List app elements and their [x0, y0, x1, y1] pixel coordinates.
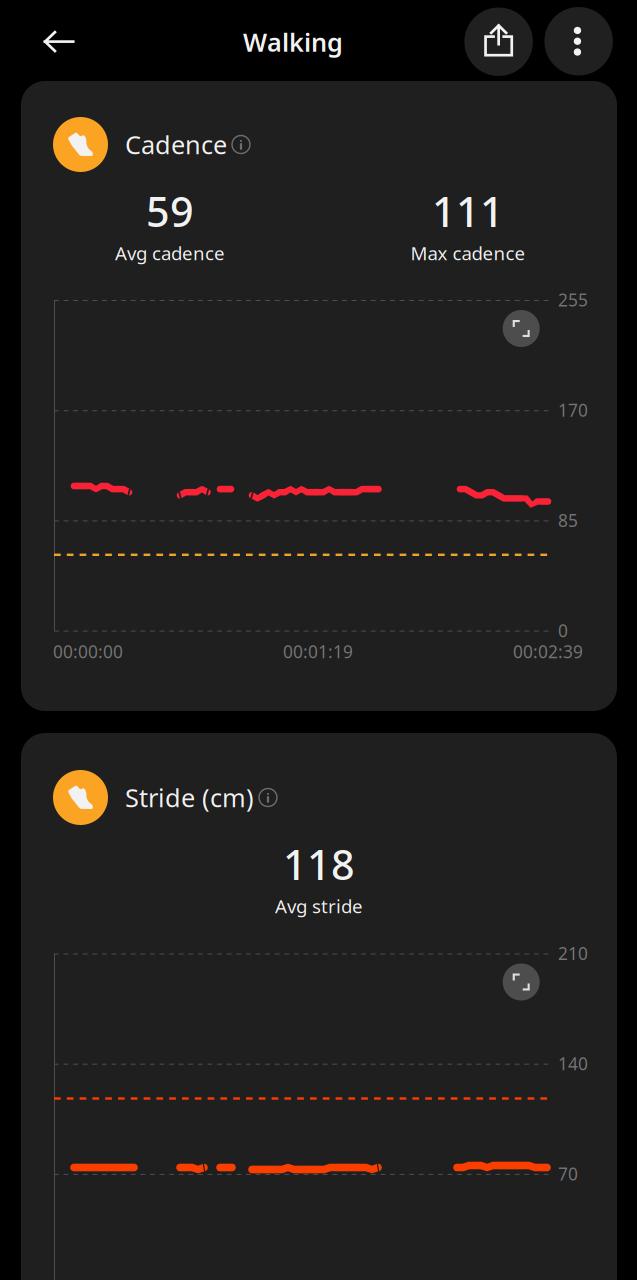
- staticText: Stride (cm): [125, 781, 254, 814]
- button[interactable]: Expand chart: [503, 963, 540, 1000]
- staticText: Max cadence: [410, 241, 525, 265]
- staticText: Walking: [243, 25, 343, 59]
- staticText: 00:01:19: [283, 640, 353, 663]
- staticText: 118: [283, 837, 355, 891]
- button[interactable]: More options: [544, 7, 613, 75]
- staticText: 0: [558, 619, 568, 642]
- button[interactable]: Expand chart: [503, 310, 540, 347]
- staticText: 00:00:00: [53, 640, 123, 663]
- staticText: 00:02:39: [513, 640, 583, 663]
- staticText: 70: [558, 1162, 578, 1185]
- staticText: 85: [558, 509, 578, 532]
- staticText: Avg stride: [275, 894, 363, 918]
- staticText: 59: [146, 184, 194, 238]
- button[interactable]: Share: [464, 7, 533, 76]
- staticText: 210: [558, 942, 588, 965]
- staticText: Cadence: [125, 128, 227, 161]
- staticText: Avg cadence: [115, 241, 225, 265]
- staticText: 111: [432, 184, 504, 238]
- staticText: 140: [558, 1052, 588, 1075]
- staticText: 255: [558, 288, 588, 311]
- button[interactable]: Back: [32, 15, 86, 69]
- staticText: 170: [558, 398, 588, 421]
